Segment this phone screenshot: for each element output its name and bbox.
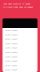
- staticText: Lorem ipsum: [4, 38, 17, 40]
- staticText: Lorem ipsum: [4, 33, 17, 36]
- staticText: to listen right now on repeat: [3, 5, 33, 9]
- staticText: Lorem ipsum: [4, 64, 17, 67]
- staticText: Lorem ipsum: [4, 46, 17, 49]
- staticText: Your new playlist is ready: [3, 2, 30, 5]
- staticText: Lorem ipsum: [4, 51, 17, 53]
- staticText: Lorem ipsum: [4, 55, 17, 58]
- staticText: Lorem ipsum: [4, 42, 17, 45]
- staticText: Lorem ipsum: [4, 60, 17, 62]
- staticText: Lorem ipsum: [4, 29, 17, 31]
- staticText: Lorem ipsum: [4, 68, 17, 71]
